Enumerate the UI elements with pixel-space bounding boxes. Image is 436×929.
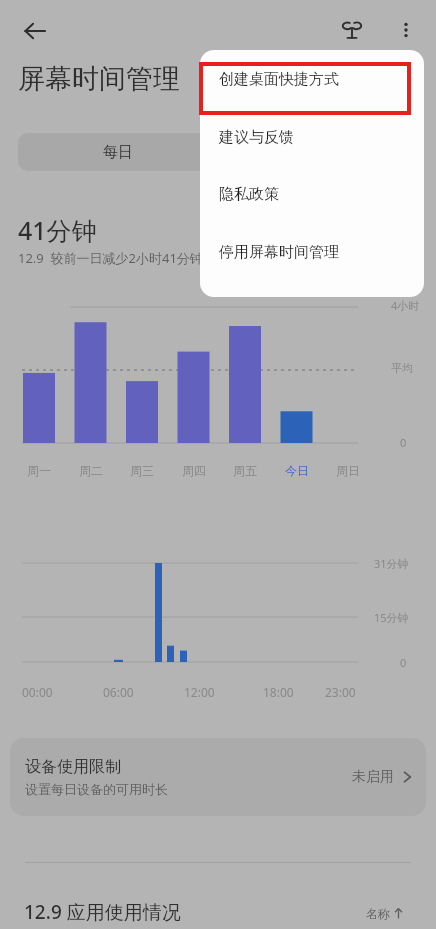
staticText: 12:00 <box>184 684 215 700</box>
staticText: 名称 <box>366 906 390 921</box>
staticText: 周五 <box>225 463 265 478</box>
staticText: 未启用 <box>352 768 394 786</box>
staticText: 41分钟 <box>18 213 97 247</box>
staticText: 周三 <box>122 463 162 478</box>
button[interactable]: More options <box>384 8 428 52</box>
staticText: 周二 <box>71 463 111 478</box>
staticText: 平均 <box>391 361 413 375</box>
staticText: 31分钟 <box>374 556 409 571</box>
staticText: 隐私政策 <box>219 185 279 204</box>
staticText: 屏幕时间管理 <box>18 62 180 96</box>
staticText: 15分钟 <box>374 610 409 625</box>
staticText: 06:00 <box>103 684 134 700</box>
staticText: 设备使用限制 <box>25 757 121 777</box>
button[interactable]: Back <box>14 10 56 52</box>
button[interactable]: 设备使用限制 <box>10 738 426 816</box>
staticText: 设置每日设备的可用时长 <box>25 781 168 797</box>
staticText: 23:00 <box>325 684 356 700</box>
staticText: 今日 <box>277 463 317 478</box>
staticText: 每日 <box>18 143 218 162</box>
button[interactable]: 名称 <box>366 906 404 921</box>
staticText: 12.9 应用使用情况 <box>24 899 181 925</box>
staticText: 4小时 <box>391 298 420 313</box>
staticText: 00:00 <box>22 684 53 700</box>
button[interactable]: 停用屏幕时间管理 <box>200 231 424 273</box>
staticText: 12.9 较前一日减少2小时41分钟 <box>18 249 203 267</box>
button[interactable]: 每日 <box>18 133 418 171</box>
button[interactable]: Focus mode <box>330 8 374 52</box>
staticText: 停用屏幕时间管理 <box>219 243 339 262</box>
button[interactable]: 创建桌面快捷方式 <box>200 58 424 100</box>
button[interactable]: 建议与反馈 <box>200 116 424 158</box>
staticText: 周一 <box>19 463 59 478</box>
staticText: 创建桌面快捷方式 <box>219 70 339 89</box>
staticText: 建议与反馈 <box>219 128 294 147</box>
staticText: 0 <box>400 435 407 450</box>
button[interactable]: 隐私政策 <box>200 173 424 215</box>
staticText: 0 <box>400 655 407 670</box>
staticText: 周四 <box>174 463 214 478</box>
staticText: 周日 <box>328 463 368 478</box>
staticText: 18:00 <box>263 684 294 700</box>
